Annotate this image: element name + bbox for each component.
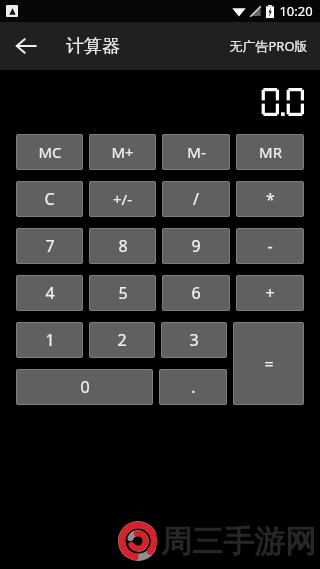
button[interactable]: . — [159, 369, 227, 405]
staticText: M- — [187, 142, 206, 162]
button[interactable]: 0 — [16, 369, 153, 405]
staticText: +/- — [113, 189, 132, 209]
staticText: 周三手游网 — [161, 522, 316, 561]
button[interactable]: 9 — [162, 228, 230, 264]
staticText: 10:20 — [279, 2, 313, 20]
button[interactable]: M+ — [89, 134, 156, 170]
button[interactable]: 6 — [162, 275, 230, 311]
staticText: 2 — [117, 329, 127, 351]
button[interactable]: 4 — [16, 275, 83, 311]
button[interactable]: 无广告PRO版 — [223, 29, 314, 63]
staticText: 0 — [80, 376, 90, 398]
staticText: 6 — [191, 282, 201, 304]
button[interactable]: +/- — [89, 181, 156, 217]
button[interactable]: / — [162, 181, 230, 217]
button[interactable]: + — [236, 275, 304, 311]
button[interactable]: - — [236, 228, 304, 264]
staticText: 5 — [118, 282, 128, 304]
staticText: 9 — [191, 235, 201, 257]
staticText: = — [264, 353, 274, 375]
button[interactable]: = — [233, 322, 304, 405]
staticText: MR — [259, 142, 282, 162]
staticText: . — [191, 376, 196, 398]
staticText: M+ — [111, 142, 134, 162]
button[interactable]: MR — [236, 134, 304, 170]
staticText: / — [193, 188, 199, 210]
staticText: 8 — [118, 235, 128, 257]
button[interactable]: 2 — [89, 322, 155, 358]
staticText: * — [266, 188, 275, 210]
staticText: 4 — [45, 282, 55, 304]
staticText: C — [44, 188, 55, 210]
staticText: 7 — [45, 235, 55, 257]
button[interactable]: M- — [162, 134, 230, 170]
staticText: MC — [38, 142, 62, 162]
button[interactable]: 7 — [16, 228, 83, 264]
staticText: 无广告PRO版 — [229, 37, 308, 55]
button[interactable]: 5 — [89, 275, 156, 311]
button[interactable]: * — [236, 181, 304, 217]
staticText: 3 — [189, 329, 199, 351]
button[interactable]: C — [16, 181, 83, 217]
button[interactable]: 8 — [89, 228, 156, 264]
staticText: 1 — [45, 329, 55, 351]
staticText: + — [265, 282, 275, 304]
button[interactable]: 1 — [16, 322, 83, 358]
button[interactable]: MC — [16, 134, 83, 170]
button[interactable]: Back — [4, 24, 48, 68]
button[interactable]: 3 — [161, 322, 227, 358]
staticText: 计算器 — [66, 35, 120, 58]
staticText: - — [267, 235, 273, 257]
